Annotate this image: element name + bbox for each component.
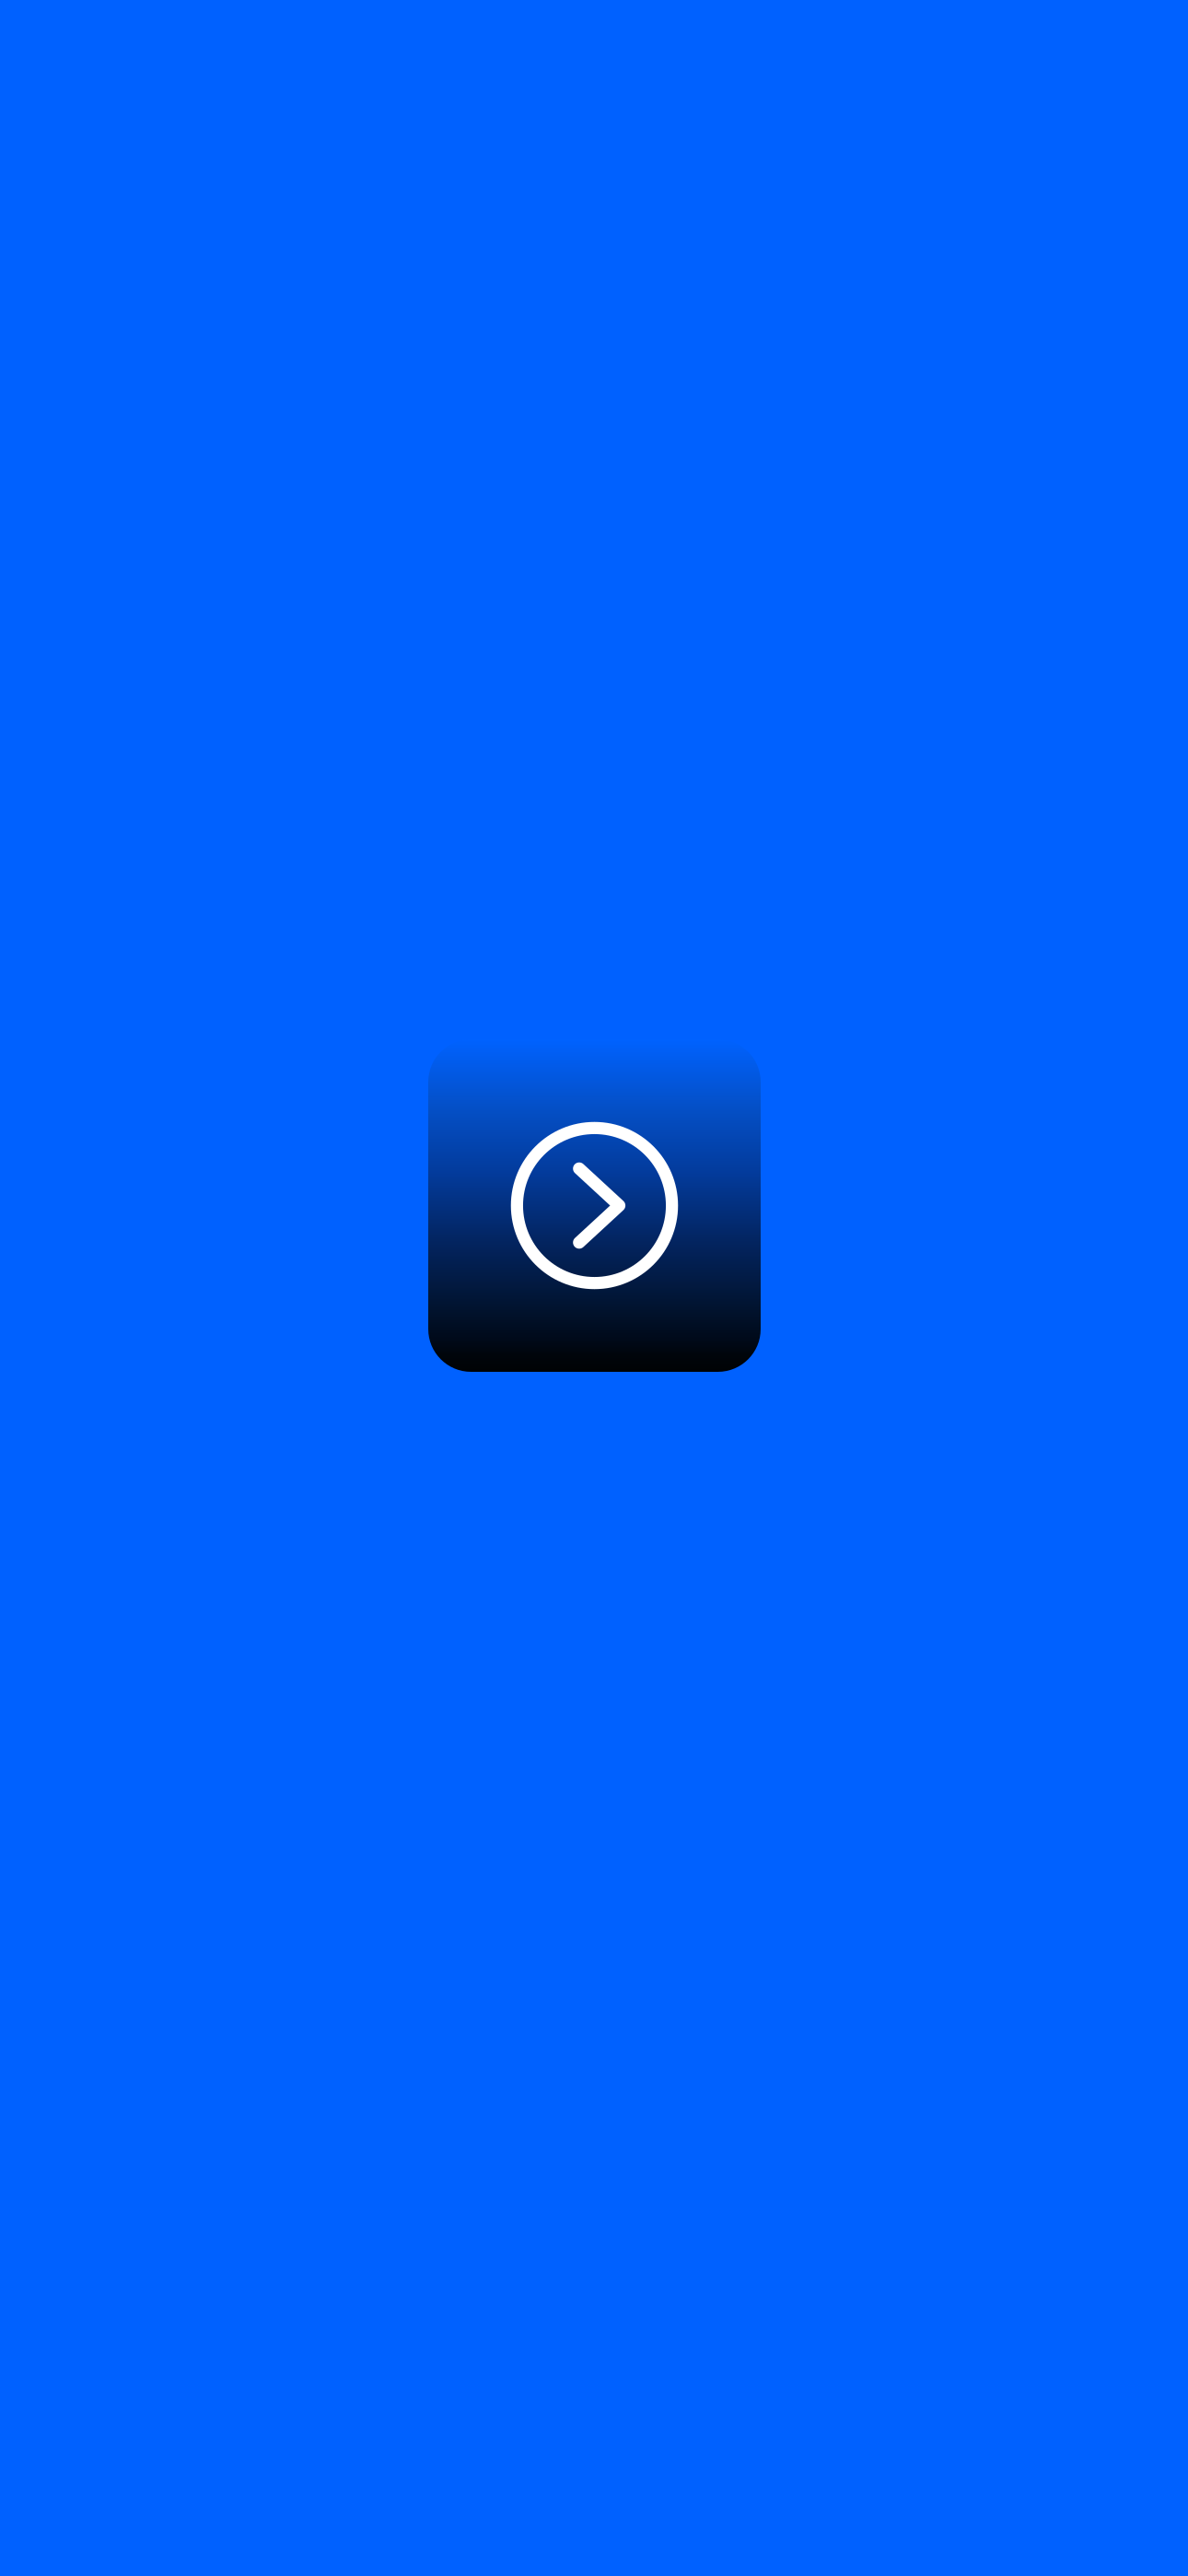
- button[interactable]: Continue: [428, 1039, 761, 1372]
